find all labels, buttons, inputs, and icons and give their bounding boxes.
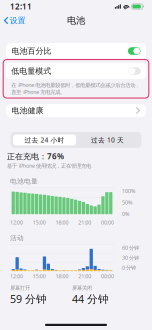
staticText: 100%: [122, 187, 135, 194]
button[interactable]: 电池百分比: [6, 43, 146, 59]
staticText: 在 iPhone 电池电量较低时，低电量模式会减少后台活动， 直至 iPhone…: [11, 81, 140, 96]
staticText: 12:00: [10, 219, 23, 226]
staticText: 30 分钟: [122, 254, 139, 261]
staticText: 18:00: [55, 219, 68, 226]
staticText: 50%: [122, 199, 132, 206]
staticText: 12:00: [10, 273, 23, 280]
staticText: 12:11: [10, 1, 32, 12]
staticText: 00:00: [101, 273, 114, 280]
button[interactable]: 过去 10 天: [76, 134, 139, 145]
staticText: 0 分钟: [122, 264, 136, 271]
staticText: 屏幕打开: [10, 285, 30, 291]
staticText: 低电量模式: [11, 66, 51, 76]
staticText: 44 分钟: [72, 292, 109, 306]
staticText: 正在充电：76%: [7, 151, 64, 161]
button[interactable]: 过去 24 小时: [13, 134, 76, 145]
staticText: 15:00: [33, 273, 46, 280]
staticText: 59 分钟: [10, 292, 47, 306]
staticText: 电池百分比: [11, 46, 51, 56]
staticText: 基于 iPhone 使用情况，正在管理充电: [7, 162, 91, 169]
button[interactable]: 设置: [0, 13, 29, 28]
button[interactable]: 电池健康: [6, 104, 146, 117]
staticText: 过去 24 小时: [24, 135, 64, 144]
staticText: 21:00: [78, 219, 91, 226]
staticText: 屏幕关闭: [72, 285, 92, 291]
button[interactable]: 低电量模式: [6, 63, 146, 79]
staticText: 设置: [10, 16, 26, 25]
staticText: 0%: [122, 210, 129, 217]
staticText: 电池电量: [10, 177, 38, 185]
staticText: 电池健康: [11, 106, 43, 115]
staticText: 18:00: [55, 273, 68, 280]
staticText: 60 分钟: [122, 244, 139, 251]
staticText: 活动: [10, 234, 24, 242]
staticText: 00:00: [101, 219, 114, 226]
staticText: 21:00: [78, 273, 91, 280]
staticText: 电池: [67, 15, 85, 26]
staticText: 15:00: [33, 219, 46, 226]
staticText: 过去 10 天: [91, 135, 124, 144]
